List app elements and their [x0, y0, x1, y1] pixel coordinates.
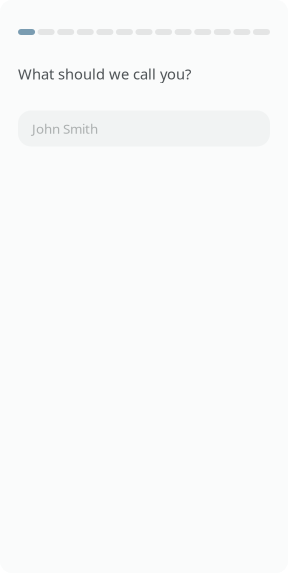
staticText: John Smith: [32, 120, 98, 137]
button[interactable]: Name: [18, 110, 270, 146]
staticText: What should we call you?: [18, 64, 191, 83]
